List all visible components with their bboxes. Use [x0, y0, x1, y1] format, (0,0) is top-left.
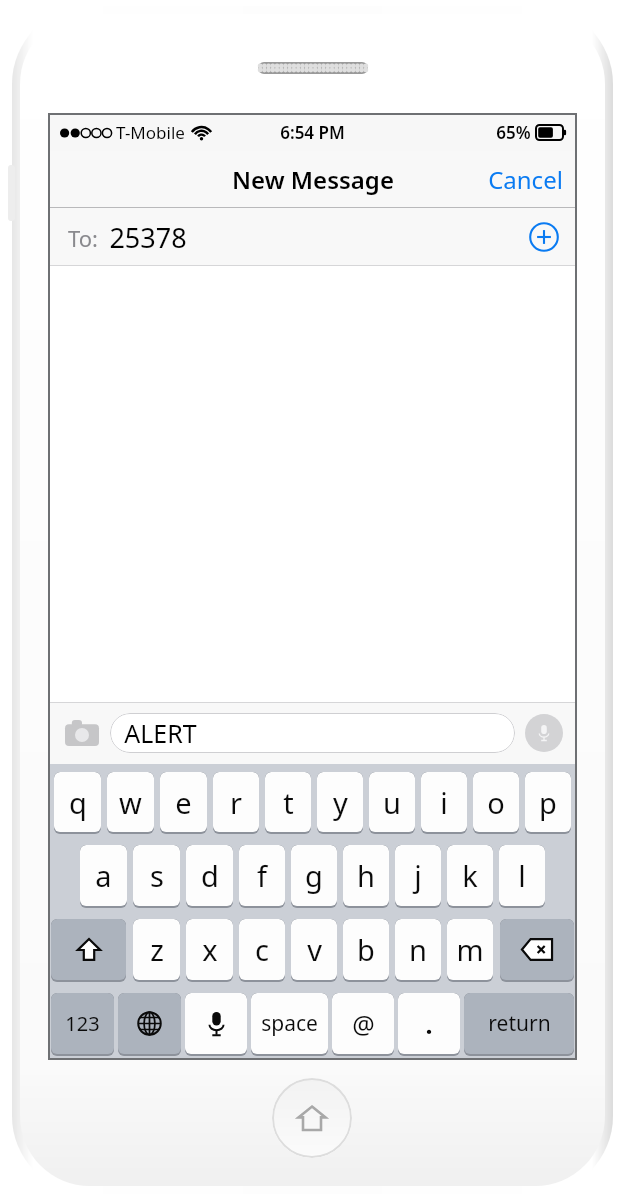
button[interactable]: k [447, 845, 493, 908]
button[interactable]: y [317, 772, 363, 834]
staticText: To: [68, 223, 98, 253]
staticText: r [230, 783, 242, 822]
button[interactable]: Backspace [500, 919, 574, 982]
staticText: a [95, 856, 112, 895]
staticText: n [409, 930, 427, 969]
staticText: 25378 [109, 219, 187, 256]
staticText: ALERT [124, 716, 197, 750]
button[interactable]: m [447, 919, 493, 982]
button[interactable]: o [473, 772, 519, 834]
staticText: i [440, 783, 448, 822]
staticText: . [425, 1007, 433, 1041]
staticText: k [462, 856, 478, 895]
staticText: b [357, 930, 375, 969]
button[interactable]: g [291, 845, 337, 908]
button[interactable]: v [291, 919, 337, 982]
button[interactable]: Camera [62, 713, 102, 753]
button[interactable]: q [54, 772, 101, 834]
button[interactable]: x [186, 919, 233, 982]
button[interactable]: r [213, 772, 259, 834]
button[interactable]: t [265, 772, 311, 834]
staticText: 65% [496, 121, 531, 144]
button[interactable]: p [525, 772, 571, 834]
button[interactable]: return [464, 993, 574, 1056]
staticText: o [487, 783, 505, 822]
staticText: 123 [65, 1010, 100, 1037]
staticText: @ [352, 1007, 375, 1041]
button[interactable]: space [251, 993, 328, 1056]
staticText: z [150, 930, 164, 969]
staticText: v [307, 930, 322, 969]
staticText: f [257, 856, 267, 895]
button[interactable]: s [133, 845, 180, 908]
button[interactable]: Shift [51, 919, 126, 982]
staticText: u [383, 783, 401, 822]
button[interactable]: Dictate [185, 993, 247, 1056]
staticText: T-Mobile [116, 121, 185, 144]
button[interactable]: f [239, 845, 285, 908]
button[interactable]: z [133, 919, 180, 982]
staticText: s [150, 856, 164, 895]
button[interactable]: w [107, 772, 154, 834]
staticText: Cancel [488, 163, 563, 196]
button[interactable]: h [343, 845, 389, 908]
button[interactable]: c [239, 919, 285, 982]
staticText: q [69, 783, 87, 822]
button[interactable]: To: [48, 208, 577, 266]
staticText: h [357, 856, 375, 895]
staticText: w [119, 783, 142, 822]
staticText: New Message [232, 163, 394, 196]
staticText: l [518, 856, 526, 895]
staticText: c [255, 930, 269, 969]
button[interactable]: j [395, 845, 441, 908]
button[interactable]: . [398, 993, 460, 1056]
button[interactable]: Add contact [527, 220, 561, 254]
staticText: g [305, 856, 323, 895]
button[interactable]: Next keyboard [118, 993, 181, 1056]
staticText: j [414, 856, 422, 895]
staticText: 6:54 PM [280, 121, 345, 144]
button[interactable]: l [499, 845, 545, 908]
button[interactable]: Cancel [474, 155, 577, 204]
staticText: p [539, 783, 557, 822]
button[interactable]: @ [332, 993, 394, 1056]
staticText: x [202, 930, 218, 969]
staticText: d [201, 856, 219, 895]
button[interactable]: n [395, 919, 441, 982]
staticText: m [456, 930, 484, 969]
staticText: e [175, 783, 192, 822]
button[interactable]: a [80, 845, 127, 908]
staticText: t [283, 783, 294, 822]
button[interactable]: b [343, 919, 389, 982]
button[interactable]: 123 [51, 993, 114, 1056]
button[interactable]: Dictate [525, 714, 563, 752]
staticText: space [261, 1009, 318, 1038]
button[interactable]: d [186, 845, 233, 908]
button[interactable]: i [421, 772, 467, 834]
staticText: y [333, 783, 348, 822]
button[interactable]: e [160, 772, 207, 834]
staticText: return [488, 1009, 551, 1038]
button[interactable]: ALERT [110, 713, 515, 753]
button[interactable]: Home [272, 1078, 352, 1158]
button[interactable]: u [369, 772, 415, 834]
